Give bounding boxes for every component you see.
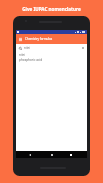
button[interactable]: nitri [16,44,87,52]
button[interactable]: Clear search [79,44,87,52]
staticText: Chemistry formulas [25,37,53,41]
staticText: phosphoric acid [19,58,43,62]
staticText: Give IUPAC nomenclature [0,6,103,12]
button[interactable]: nitri [16,52,87,57]
button[interactable]: phosphoric acid [16,57,87,62]
button[interactable]: Back [26,151,34,158]
button[interactable]: Recent apps [67,151,75,158]
button[interactable]: Open navigation menu [16,34,25,44]
staticText: nitri [24,46,30,50]
button[interactable]: Home [48,151,56,158]
staticText: nitri [19,53,25,57]
